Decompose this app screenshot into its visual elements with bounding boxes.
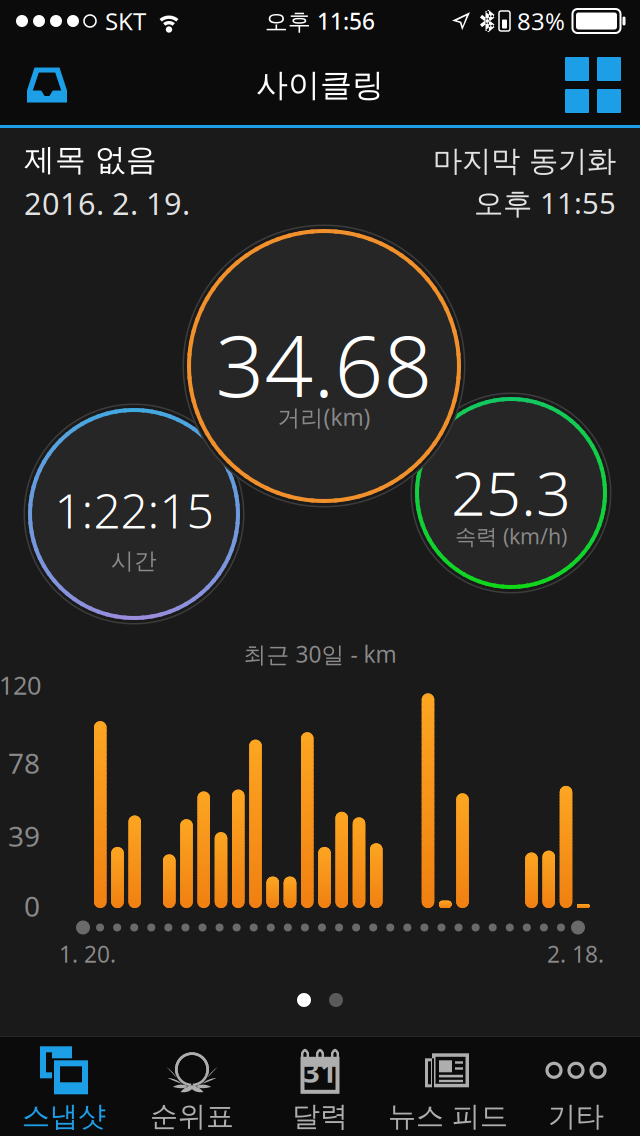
staticText: 1:22:15 (54, 478, 213, 542)
staticText: 39 (8, 817, 40, 855)
staticText: 속력 (km/h) (455, 522, 567, 550)
button[interactable]: Grid view (552, 42, 634, 128)
staticText: 오후 11:56 (265, 6, 375, 36)
staticText: 사이클링 (256, 65, 384, 105)
button[interactable]: Inbox (6, 42, 88, 128)
staticText: SKT (105, 5, 146, 37)
staticText: 오후 11:55 (474, 183, 616, 222)
staticText: 120 (0, 668, 41, 702)
staticText: 2. 18. (547, 939, 604, 969)
staticText: 34.68 (215, 307, 432, 421)
button[interactable]: 스냅샷 (0, 1036, 128, 1136)
button[interactable]: 순위표 (128, 1036, 256, 1136)
staticText: 31 (303, 1052, 337, 1091)
staticText: 제목 없음 (24, 141, 157, 179)
staticText: 최근 30일 - km (243, 639, 396, 669)
button[interactable]: 31 (256, 1036, 384, 1136)
staticText: 뉴스 피드 (388, 1099, 508, 1134)
staticText: 1. 20. (59, 939, 116, 969)
staticText: 2016. 2. 19. (24, 183, 190, 223)
staticText: 78 (8, 744, 40, 782)
staticText: 시간 (111, 547, 157, 575)
button[interactable]: 뉴스 피드 (384, 1036, 512, 1136)
staticText: 25.3 (451, 451, 571, 533)
staticText: 달력 (292, 1099, 348, 1134)
staticText: 마지막 동기화 (433, 143, 616, 179)
staticText: 순위표 (150, 1099, 234, 1134)
staticText: 83% (517, 5, 565, 37)
staticText: 스냅샷 (22, 1099, 106, 1134)
staticText: 기타 (548, 1099, 604, 1134)
button[interactable]: 기타 (512, 1036, 640, 1136)
staticText: 거리(km) (277, 402, 370, 432)
staticText: 0 (24, 887, 40, 925)
